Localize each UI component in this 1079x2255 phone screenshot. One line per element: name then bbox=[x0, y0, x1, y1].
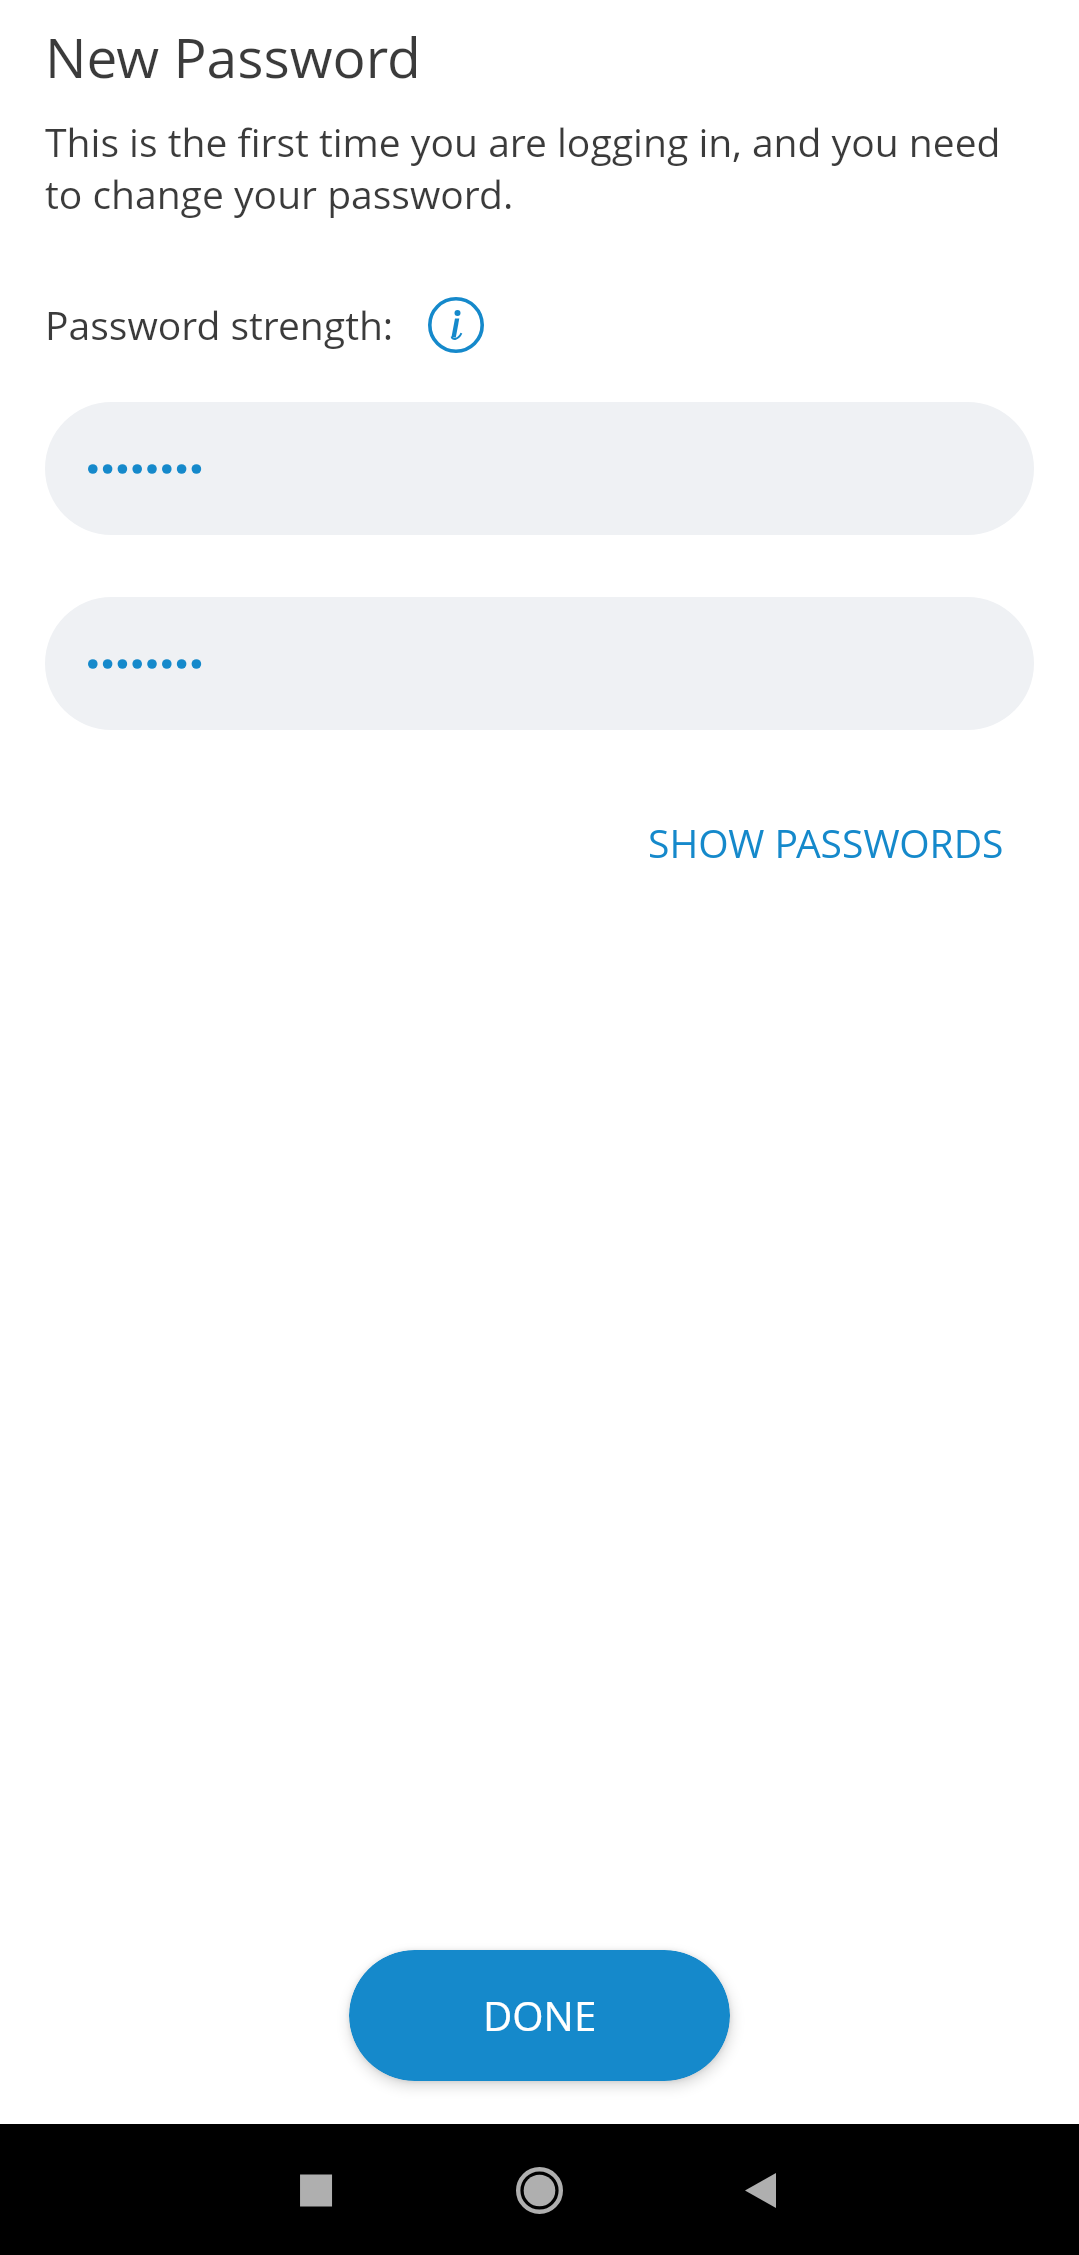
staticText: DONE bbox=[483, 1988, 597, 2043]
staticText: Password strength: bbox=[45, 298, 394, 351]
button[interactable]: Confirm new password bbox=[45, 597, 1034, 730]
staticText: This is the first time you are logging i… bbox=[45, 115, 1019, 220]
button[interactable]: DONE bbox=[349, 1950, 730, 2081]
staticText: SHOW PASSWORDS bbox=[648, 816, 1004, 869]
button[interactable]: New password bbox=[45, 402, 1034, 535]
button[interactable]: Home bbox=[359, 2124, 719, 2255]
button[interactable]: Password strength info bbox=[420, 289, 492, 361]
staticText: New Password bbox=[45, 19, 421, 94]
button[interactable]: SHOW PASSWORDS bbox=[573, 789, 1079, 896]
button[interactable]: Back bbox=[719, 2124, 1079, 2255]
button[interactable]: Recent apps bbox=[0, 2124, 359, 2255]
